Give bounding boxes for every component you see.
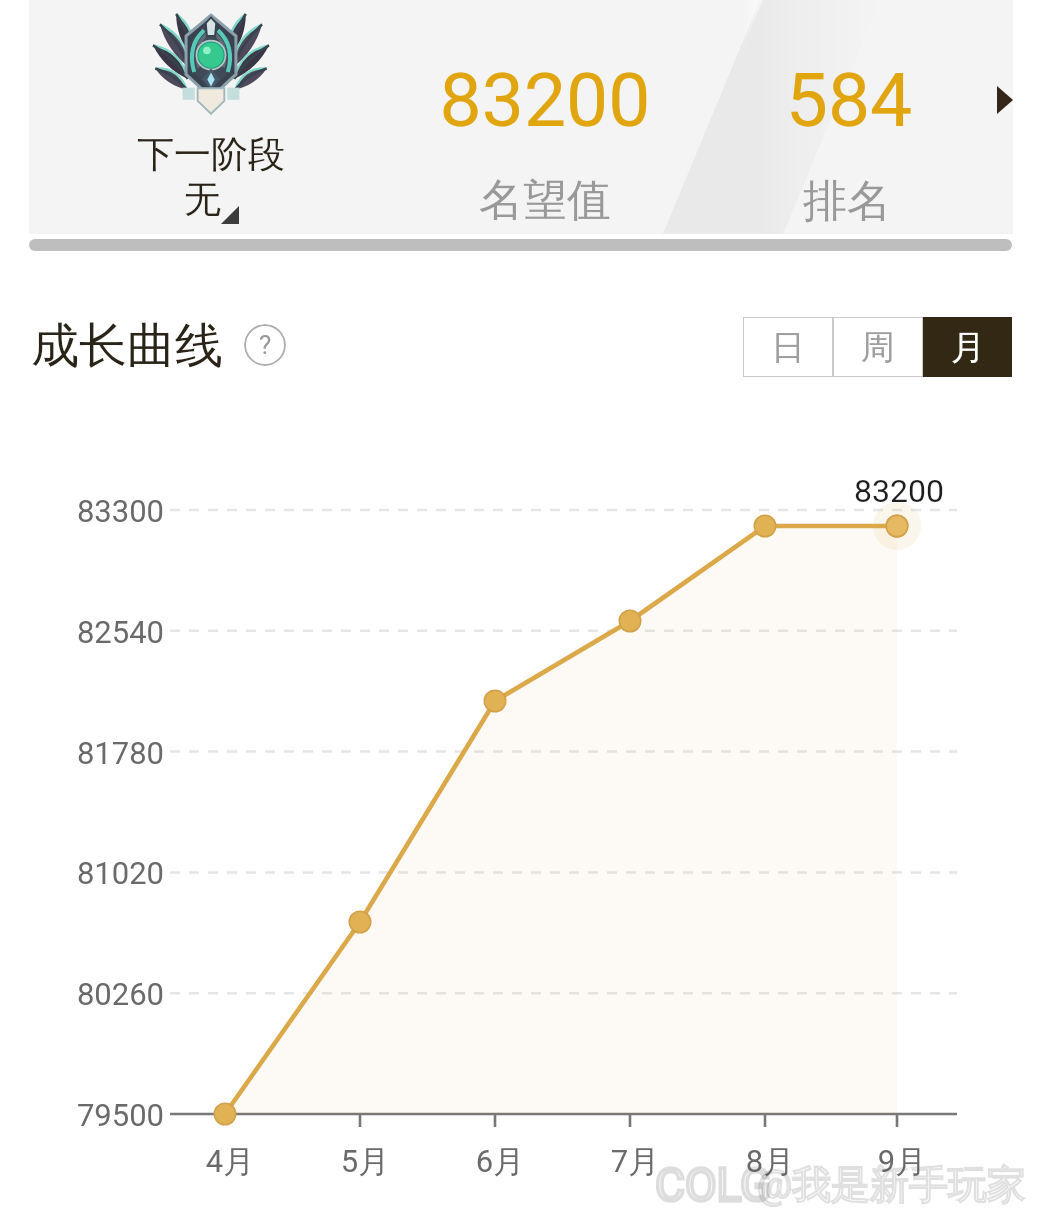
staticText: 83300 [44,493,164,529]
button[interactable]: 584 [707,0,987,234]
staticText: 排名 [707,174,987,229]
button[interactable]: 下一阶段 [29,0,1013,234]
staticText: @我是新手玩家 [757,1160,1027,1209]
staticText: 月 [951,326,985,369]
staticText: 5月 [317,1142,413,1181]
staticText: 7月 [587,1142,683,1181]
staticText: 584 [709,56,989,144]
staticText: 名望值 [405,173,685,228]
button[interactable]: 周 [833,317,923,377]
staticText: 8月 [722,1142,818,1181]
staticText: 82540 [44,614,164,650]
button[interactable]: 帮助 [244,324,286,366]
staticText: 日 [771,326,805,369]
staticText: 4月 [182,1142,278,1181]
staticText: 下一阶段 [81,131,341,178]
staticText: 80260 [44,976,164,1012]
staticText: 81780 [44,735,164,771]
staticText: COLG [655,1158,772,1212]
staticText: ? [259,330,272,360]
staticText: 81020 [44,855,164,891]
staticText: 6月 [452,1142,548,1181]
staticText: 成长曲线 [31,316,223,376]
button[interactable]: 83200 [405,0,685,234]
button[interactable]: 下一阶段 [81,0,341,234]
button[interactable]: 日 [743,317,833,377]
button[interactable]: 月 [923,317,1012,377]
staticText: 83200 [839,472,959,510]
button[interactable]: 更多 [981,76,1029,124]
staticText: 9月 [854,1142,950,1181]
staticText: 79500 [44,1097,164,1133]
staticText: 83200 [405,56,685,144]
staticText: 无 [184,176,221,223]
staticText: 周 [861,326,895,369]
